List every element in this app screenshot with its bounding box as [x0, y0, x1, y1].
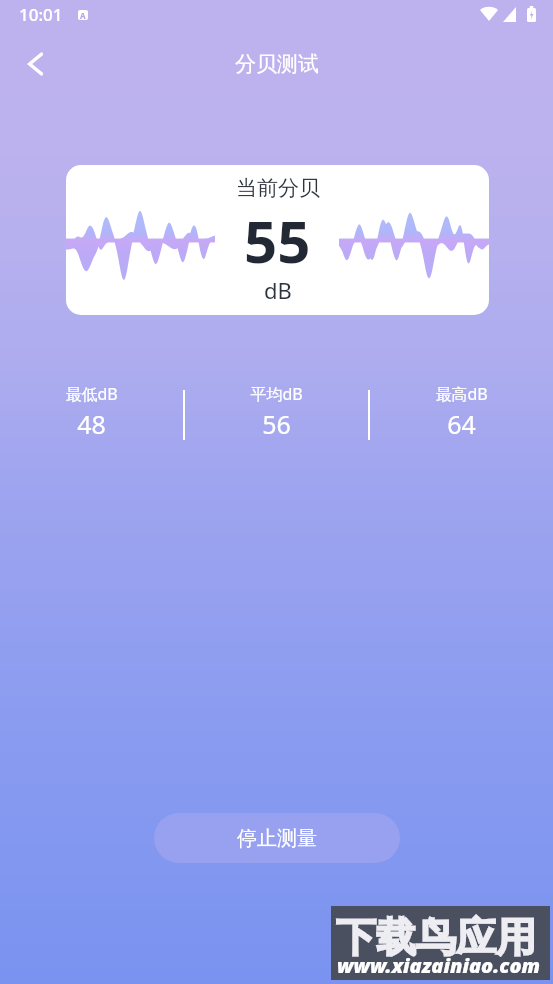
staticText: 停止测量: [237, 826, 317, 851]
staticText: 下载鸟应用: [336, 912, 536, 962]
staticText: dB: [264, 275, 292, 305]
staticText: 10:01: [19, 3, 63, 26]
staticText: 平均dB: [250, 383, 303, 405]
staticText: 最低dB: [65, 383, 118, 405]
button[interactable]: 停止测量: [154, 813, 400, 863]
staticText: 最高dB: [435, 383, 488, 405]
staticText: 当前分贝: [236, 175, 320, 201]
staticText: www.xiazainiao.com: [337, 952, 541, 979]
staticText: 56: [262, 407, 291, 439]
staticText: A: [80, 10, 86, 20]
staticText: 55: [244, 201, 311, 280]
staticText: 64: [447, 407, 476, 439]
staticText: 分贝测试: [235, 51, 319, 77]
button[interactable]: Back: [12, 42, 56, 86]
staticText: 48: [77, 407, 106, 439]
